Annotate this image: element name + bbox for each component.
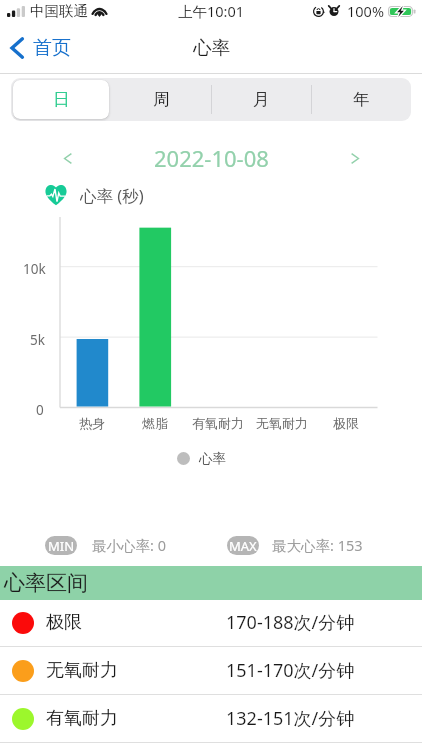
staticText: MAX xyxy=(229,537,257,555)
staticText: 100% xyxy=(347,1,384,21)
staticText: 年 xyxy=(353,89,370,110)
staticText: 无氧耐力 xyxy=(46,659,118,682)
staticText: 心率 xyxy=(199,450,226,467)
staticText: 上午10:01 xyxy=(178,1,245,21)
staticText: 170-188次/分钟 xyxy=(226,610,355,635)
button[interactable]: Previous day xyxy=(58,147,78,170)
button[interactable]: 首页 xyxy=(0,32,79,64)
button[interactable]: 月 xyxy=(211,78,311,121)
staticText: 最小心率: 0 xyxy=(92,535,166,555)
staticText: 有氧耐力 xyxy=(46,707,118,730)
button[interactable]: Next day xyxy=(345,147,365,170)
staticText: 极限 xyxy=(46,611,82,634)
staticText: MIN xyxy=(48,537,75,555)
staticText: 燃脂 xyxy=(142,415,168,431)
staticText: 最大心率: 153 xyxy=(272,535,363,555)
button[interactable] xyxy=(11,78,111,121)
button[interactable]: 周 xyxy=(111,78,211,121)
staticText: 0 xyxy=(36,401,44,419)
staticText: 132-151次/分钟 xyxy=(226,706,355,731)
staticText: 极限 xyxy=(333,415,359,431)
staticText: 心率区间 xyxy=(4,570,88,596)
button[interactable]: 极限 xyxy=(0,599,422,646)
staticText: 首页 xyxy=(33,36,71,60)
staticText: 热身 xyxy=(79,415,105,431)
button[interactable]: 日 xyxy=(13,80,109,119)
staticText: 2022-10-08 xyxy=(154,143,269,173)
staticText: 中国联通 xyxy=(30,2,88,20)
staticText: 5k xyxy=(30,331,45,349)
staticText: 151-170次/分钟 xyxy=(226,658,355,683)
staticText: 无氧耐力 xyxy=(256,415,308,431)
staticText: 日 xyxy=(53,89,70,110)
button[interactable]: 年 xyxy=(311,78,411,121)
staticText: 心率 (秒) xyxy=(80,184,144,206)
button[interactable]: 无氧耐力 xyxy=(0,647,422,694)
staticText: 10k xyxy=(23,260,46,278)
button[interactable]: 有氧耐力 xyxy=(0,695,422,742)
staticText: 心率 xyxy=(193,36,230,59)
staticText: 月 xyxy=(253,89,270,110)
staticText: 有氧耐力 xyxy=(192,415,244,431)
staticText: 周 xyxy=(153,89,170,110)
